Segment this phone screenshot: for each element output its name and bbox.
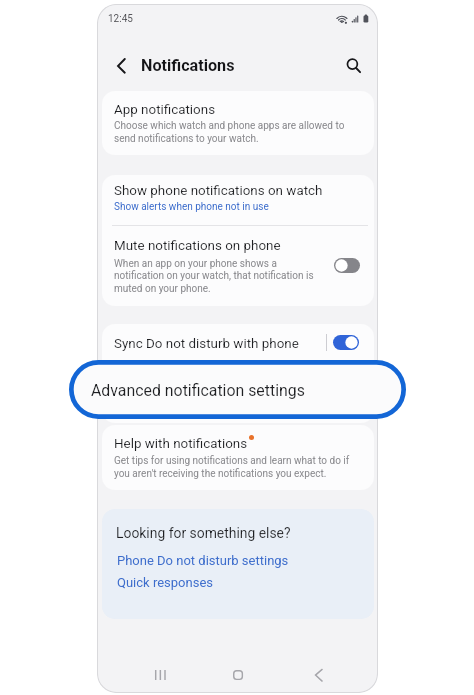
button[interactable]: Home (223, 660, 254, 691)
staticText: When an app on your phone shows a (114, 258, 277, 270)
staticText: Show phone notifications on watch (114, 183, 323, 199)
button[interactable] (102, 91, 374, 155)
button[interactable]: Switch off (334, 258, 360, 273)
button[interactable] (102, 425, 374, 490)
button[interactable] (102, 225, 374, 305)
staticText: 12:45 (108, 13, 133, 25)
staticText: send notifications to your watch. (114, 133, 259, 145)
staticText: you aren't receiving the notifications y… (114, 468, 327, 480)
staticText: Get tips for using notifications and lea… (114, 455, 350, 467)
staticText: notification on your watch, that notific… (114, 270, 314, 282)
staticText: Advanced notification settings (91, 381, 305, 400)
button[interactable]: Phone Do not disturb settings (117, 553, 289, 568)
button[interactable]: Search (341, 53, 365, 77)
button[interactable]: Quick responses (117, 575, 213, 590)
staticText: App notifications (114, 102, 216, 118)
staticText: Choose which watch and phone apps are al… (114, 120, 345, 132)
button[interactable] (102, 324, 374, 361)
staticText: Show alerts when phone not in use (114, 201, 269, 213)
staticText: Looking for something else? (116, 525, 291, 541)
staticText: Sync Do not disturb with phone (114, 336, 299, 352)
staticText: muted on your phone. (114, 283, 211, 295)
staticText: Help with notifications (114, 436, 248, 452)
button[interactable]: Recent apps (145, 660, 177, 691)
staticText: Mute notifications on phone (114, 238, 281, 254)
button[interactable]: Back (304, 658, 334, 692)
button[interactable]: Switch on (333, 335, 359, 350)
staticText: Notifications (141, 56, 235, 75)
button[interactable]: Back (113, 53, 135, 75)
button[interactable]: Advanced notification settings (69, 360, 406, 419)
button[interactable] (102, 175, 374, 225)
